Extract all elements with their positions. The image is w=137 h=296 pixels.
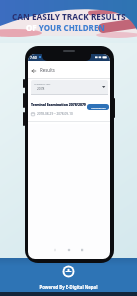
staticText: CAN EASILY TRACK RESULTS <box>12 11 126 22</box>
staticText: Academic Year <box>34 82 51 85</box>
button[interactable]: Academic Year <box>31 80 108 95</box>
staticText: Terminal Examination 2078/2079 <box>31 102 86 107</box>
button[interactable]: Unpublished <box>87 104 109 110</box>
button[interactable]: Terminal Examination 2078/2079 <box>28 100 110 124</box>
staticText: 7:50 <box>30 55 37 60</box>
staticText: Unpublished <box>91 106 106 109</box>
staticText: Terminal Examination 2078/2079 <box>31 102 86 107</box>
staticText: Terminal Examination 2078/2079 <box>31 102 86 107</box>
staticText: Powered By E-Digital Nepal <box>0 284 137 292</box>
staticText: OF YOUR CHILDREN <box>26 22 105 33</box>
button[interactable] <box>32 69 36 73</box>
staticText: 2078-08-29 ~ 2078-09-10 <box>37 112 73 116</box>
staticText: Results <box>40 67 55 73</box>
staticText: 2078 <box>37 87 45 91</box>
